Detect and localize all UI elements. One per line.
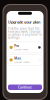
staticText: $100 per month: [14, 60, 29, 63]
button[interactable]: Pro: [8, 42, 42, 53]
staticText: Max: [14, 56, 21, 60]
staticText: Continue: [18, 85, 32, 89]
staticText: Pick the plan that fits how you work. Ch…: [8, 27, 42, 39]
button[interactable]: Max: [8, 54, 42, 65]
staticText: Pro: [14, 44, 19, 48]
staticText: Upgrade your plan: [8, 19, 40, 24]
staticText: $20 per month: [14, 48, 28, 51]
button[interactable]: Continue: [8, 84, 42, 90]
